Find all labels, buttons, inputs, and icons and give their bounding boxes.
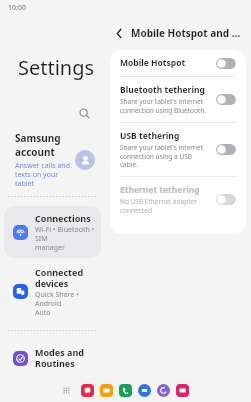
staticText: Mobile Hotspot and Te... <box>131 26 243 40</box>
staticText: account <box>15 145 55 159</box>
button[interactable]: App <box>119 384 132 397</box>
button[interactable]: Bluetooth tethering <box>110 77 246 122</box>
staticText: Quick Share • Android Auto <box>35 290 95 317</box>
button[interactable]: Toggle <box>216 94 236 105</box>
staticText: Share your tablet's internet connection … <box>120 97 206 115</box>
button[interactable]: Search <box>75 104 93 122</box>
staticText: 10:00 <box>8 3 26 13</box>
staticText: Bluetooth tethering <box>120 84 205 96</box>
button[interactable]: App <box>176 384 189 397</box>
button[interactable]: Connected devices <box>4 260 101 323</box>
staticText: Ethernet tethering <box>120 184 200 196</box>
button[interactable]: App <box>157 384 170 397</box>
staticText: Samsung <box>15 131 61 145</box>
button[interactable]: Ethernet tethering <box>110 177 246 222</box>
staticText: Wi-Fi • Bluetooth • SIM manager <box>35 225 95 252</box>
button[interactable]: USB tethering <box>110 123 246 176</box>
button[interactable]: Mobile Hotspot <box>110 50 246 76</box>
button[interactable]: App <box>81 384 94 397</box>
button[interactable]: Back <box>110 24 128 42</box>
staticText: Connected devices <box>35 266 95 289</box>
button[interactable]: Toggle <box>216 144 236 155</box>
staticText: Share your tablet's internet connection … <box>120 143 210 169</box>
button[interactable]: App <box>138 384 151 397</box>
button[interactable]: Connections <box>4 206 101 258</box>
staticText: USB tethering <box>120 130 180 142</box>
button[interactable]: Samsung <box>0 129 105 196</box>
button[interactable]: All apps <box>59 383 73 397</box>
staticText: Settings <box>18 54 95 81</box>
staticText: Connections <box>35 212 91 224</box>
staticText: Answer calls and texts on your tablet <box>15 161 70 188</box>
button[interactable]: Toggle <box>216 194 236 205</box>
button[interactable]: Modes and Routines <box>4 340 101 377</box>
staticText: No USB Ethernet adapter connected <box>120 197 210 215</box>
button[interactable]: App <box>100 384 113 397</box>
button[interactable]: Toggle <box>216 58 236 69</box>
staticText: Modes and Routines <box>35 346 84 369</box>
staticText: Mobile Hotspot <box>120 57 186 69</box>
